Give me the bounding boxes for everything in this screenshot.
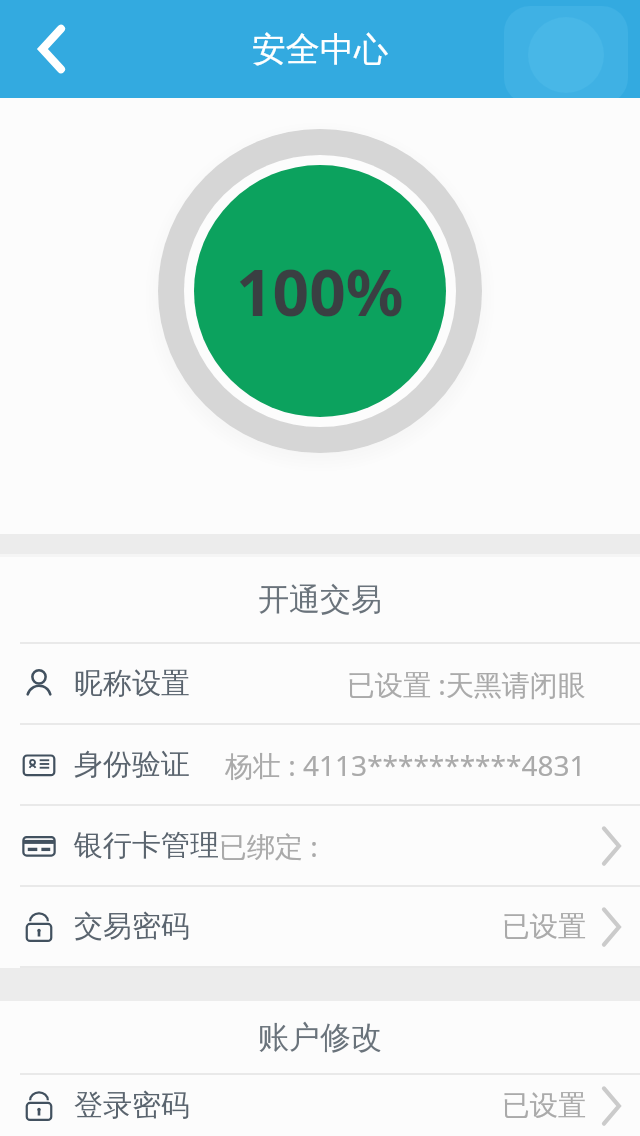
button[interactable]: Back: [0, 0, 104, 98]
staticText: 昵称设置: [74, 665, 190, 702]
staticText: 开通交易: [258, 580, 382, 619]
staticText: 银行卡管理: [74, 827, 219, 864]
staticText: 交易密码: [74, 908, 190, 945]
button[interactable]: 银行卡管理: [0, 806, 640, 885]
staticText: 登录密码: [74, 1087, 190, 1124]
button[interactable]: More: [504, 6, 628, 104]
staticText: 已设置: [502, 909, 586, 944]
staticText: 身份验证: [74, 746, 190, 783]
button[interactable]: 身份验证: [0, 725, 640, 804]
button[interactable]: 昵称设置: [0, 644, 640, 723]
button[interactable]: 登录密码: [0, 1075, 640, 1136]
staticText: 账户修改: [258, 1018, 382, 1057]
staticText: 已绑定 : 6222**********2194: [219, 827, 586, 865]
staticText: 安全等级：高: [227, 564, 413, 603]
staticText: 安全中心: [252, 28, 388, 71]
staticText: 杨壮 : 4113**********4831: [225, 746, 586, 784]
staticText: 已设置: [502, 1088, 586, 1123]
staticText: 已设置 :天黑请闭眼: [347, 665, 586, 703]
staticText: 100%: [236, 248, 404, 335]
button[interactable]: 交易密码: [0, 887, 640, 966]
